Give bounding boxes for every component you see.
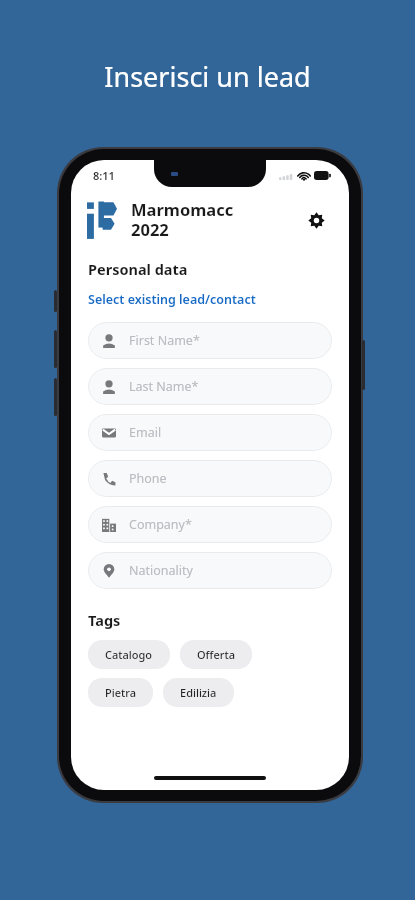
staticText: Tags	[88, 610, 121, 630]
staticText: Email	[129, 424, 162, 441]
staticText: 8:11	[93, 168, 115, 183]
staticText: First Name*	[129, 332, 200, 349]
button[interactable]: Last Name*	[88, 368, 332, 405]
staticText: Select existing lead/contact	[88, 291, 256, 308]
button[interactable]: Nationality	[88, 552, 332, 589]
staticText: Last Name*	[129, 378, 199, 395]
button[interactable]: Phone	[88, 460, 332, 497]
staticText: Pietra	[105, 685, 136, 700]
button[interactable]: Edilizia	[163, 678, 234, 707]
button[interactable]: Settings	[299, 203, 333, 237]
staticText: Inserisci un lead	[104, 58, 311, 95]
button[interactable]: Offerta	[180, 640, 252, 669]
staticText: Edilizia	[180, 685, 217, 700]
staticText: Nationality	[129, 562, 193, 579]
button[interactable]: Pietra	[88, 678, 153, 707]
button[interactable]: Catalogo	[88, 640, 170, 669]
button[interactable]: Select existing lead/contact	[88, 291, 256, 308]
staticText: Marmomacc 2022	[131, 198, 299, 241]
button[interactable]: Company*	[88, 506, 332, 543]
staticText: Company*	[129, 516, 192, 533]
button[interactable]: Email	[88, 414, 332, 451]
staticText: Personal data	[88, 259, 188, 279]
staticText: Phone	[129, 470, 167, 487]
staticText: Catalogo	[105, 647, 153, 662]
button[interactable]: First Name*	[88, 322, 332, 359]
staticText: Offerta	[197, 647, 235, 662]
